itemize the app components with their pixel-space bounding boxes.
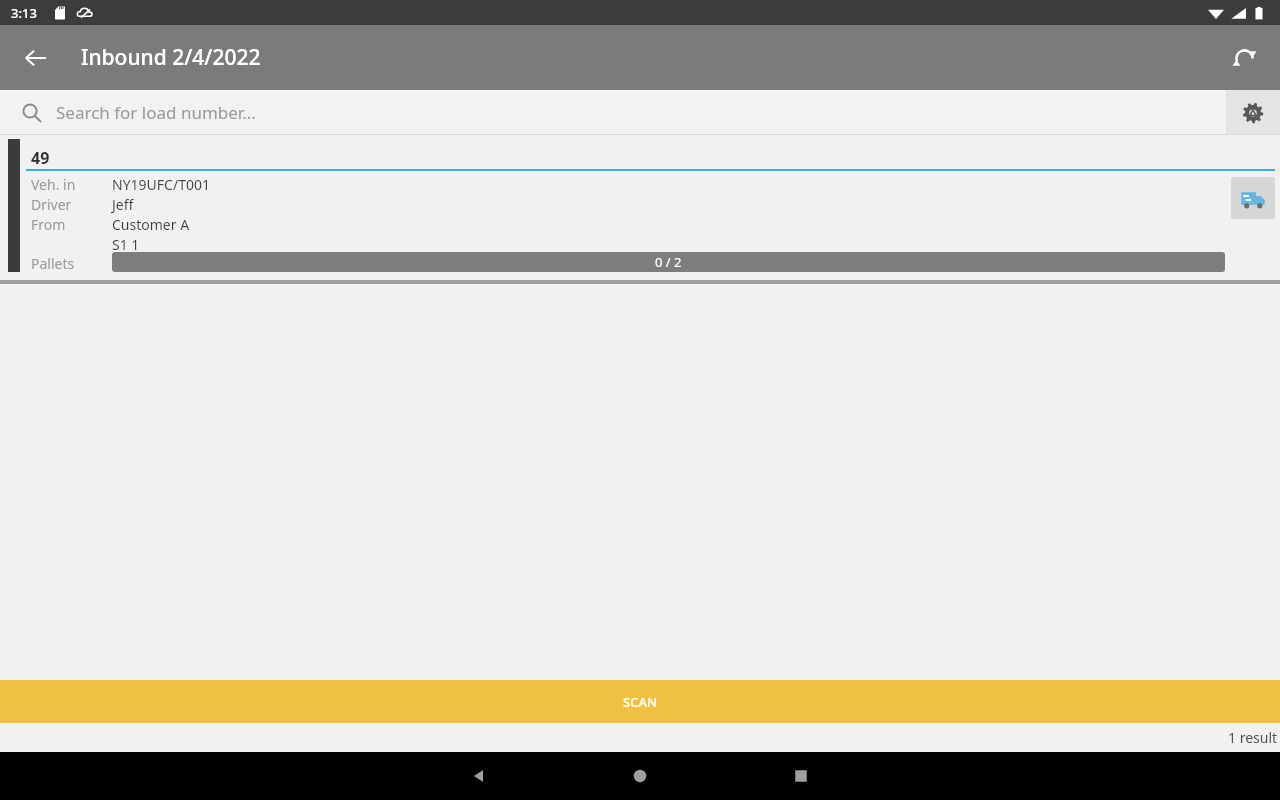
staticText: Search for load number...	[56, 101, 256, 124]
button[interactable]: Refresh	[1220, 34, 1268, 82]
staticText: Customer A	[112, 215, 190, 234]
staticText: From	[31, 215, 66, 234]
staticText: 49	[31, 147, 50, 169]
button[interactable]: Back	[455, 752, 503, 800]
staticText: S1 1	[112, 235, 140, 254]
staticText: 0 / 2	[655, 253, 682, 271]
staticText: Veh. in	[31, 175, 76, 194]
staticText: Jeff	[112, 195, 134, 214]
staticText: Inbound 2/4/2022	[81, 43, 261, 72]
button[interactable]: Back	[12, 34, 60, 82]
staticText: 1 result	[1228, 728, 1278, 747]
button[interactable]: 49	[0, 135, 1280, 280]
staticText: SCAN	[623, 693, 658, 711]
staticText: Pallets	[31, 254, 75, 273]
button[interactable]: Home	[616, 752, 664, 800]
button[interactable]: Recent apps	[777, 752, 825, 800]
button[interactable]: Settings	[1226, 90, 1280, 135]
staticText: Driver	[31, 195, 72, 214]
button[interactable]: SCAN	[0, 680, 1280, 723]
staticText: NY19UFC/T001	[112, 175, 210, 194]
button[interactable]: Search for load number...	[0, 90, 1280, 135]
button[interactable]: Unload vehicle	[1231, 177, 1275, 219]
staticText: 3:13	[11, 4, 37, 22]
